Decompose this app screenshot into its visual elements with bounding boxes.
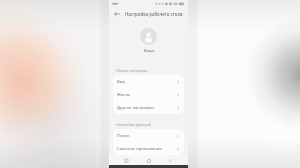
staticText: Скрытые приложения	[117, 146, 176, 152]
staticText: Поиск	[117, 133, 176, 139]
staticText: Другие настройки	[117, 105, 176, 111]
button[interactable]: Главный экран	[144, 156, 153, 165]
button[interactable]: Другие настройки	[113, 101, 184, 114]
button[interactable]: Вход	[109, 21, 188, 61]
button[interactable]: Назад	[166, 156, 175, 165]
button[interactable]: Назад	[112, 9, 122, 19]
button[interactable]: Скрытые приложения	[113, 142, 184, 155]
staticText: Вид	[117, 79, 176, 85]
staticText: Настройки функций	[116, 122, 151, 127]
staticText: Настройка рабочего стола	[125, 11, 183, 17]
staticText: Жесты	[117, 92, 176, 98]
staticText: Вход	[144, 48, 154, 54]
button[interactable]: Недавние	[122, 156, 131, 165]
button[interactable]: Поиск	[113, 129, 184, 142]
staticText: Общие настройки	[116, 68, 148, 73]
button[interactable]: Вид	[113, 75, 184, 88]
button[interactable]: Жесты	[113, 88, 184, 101]
